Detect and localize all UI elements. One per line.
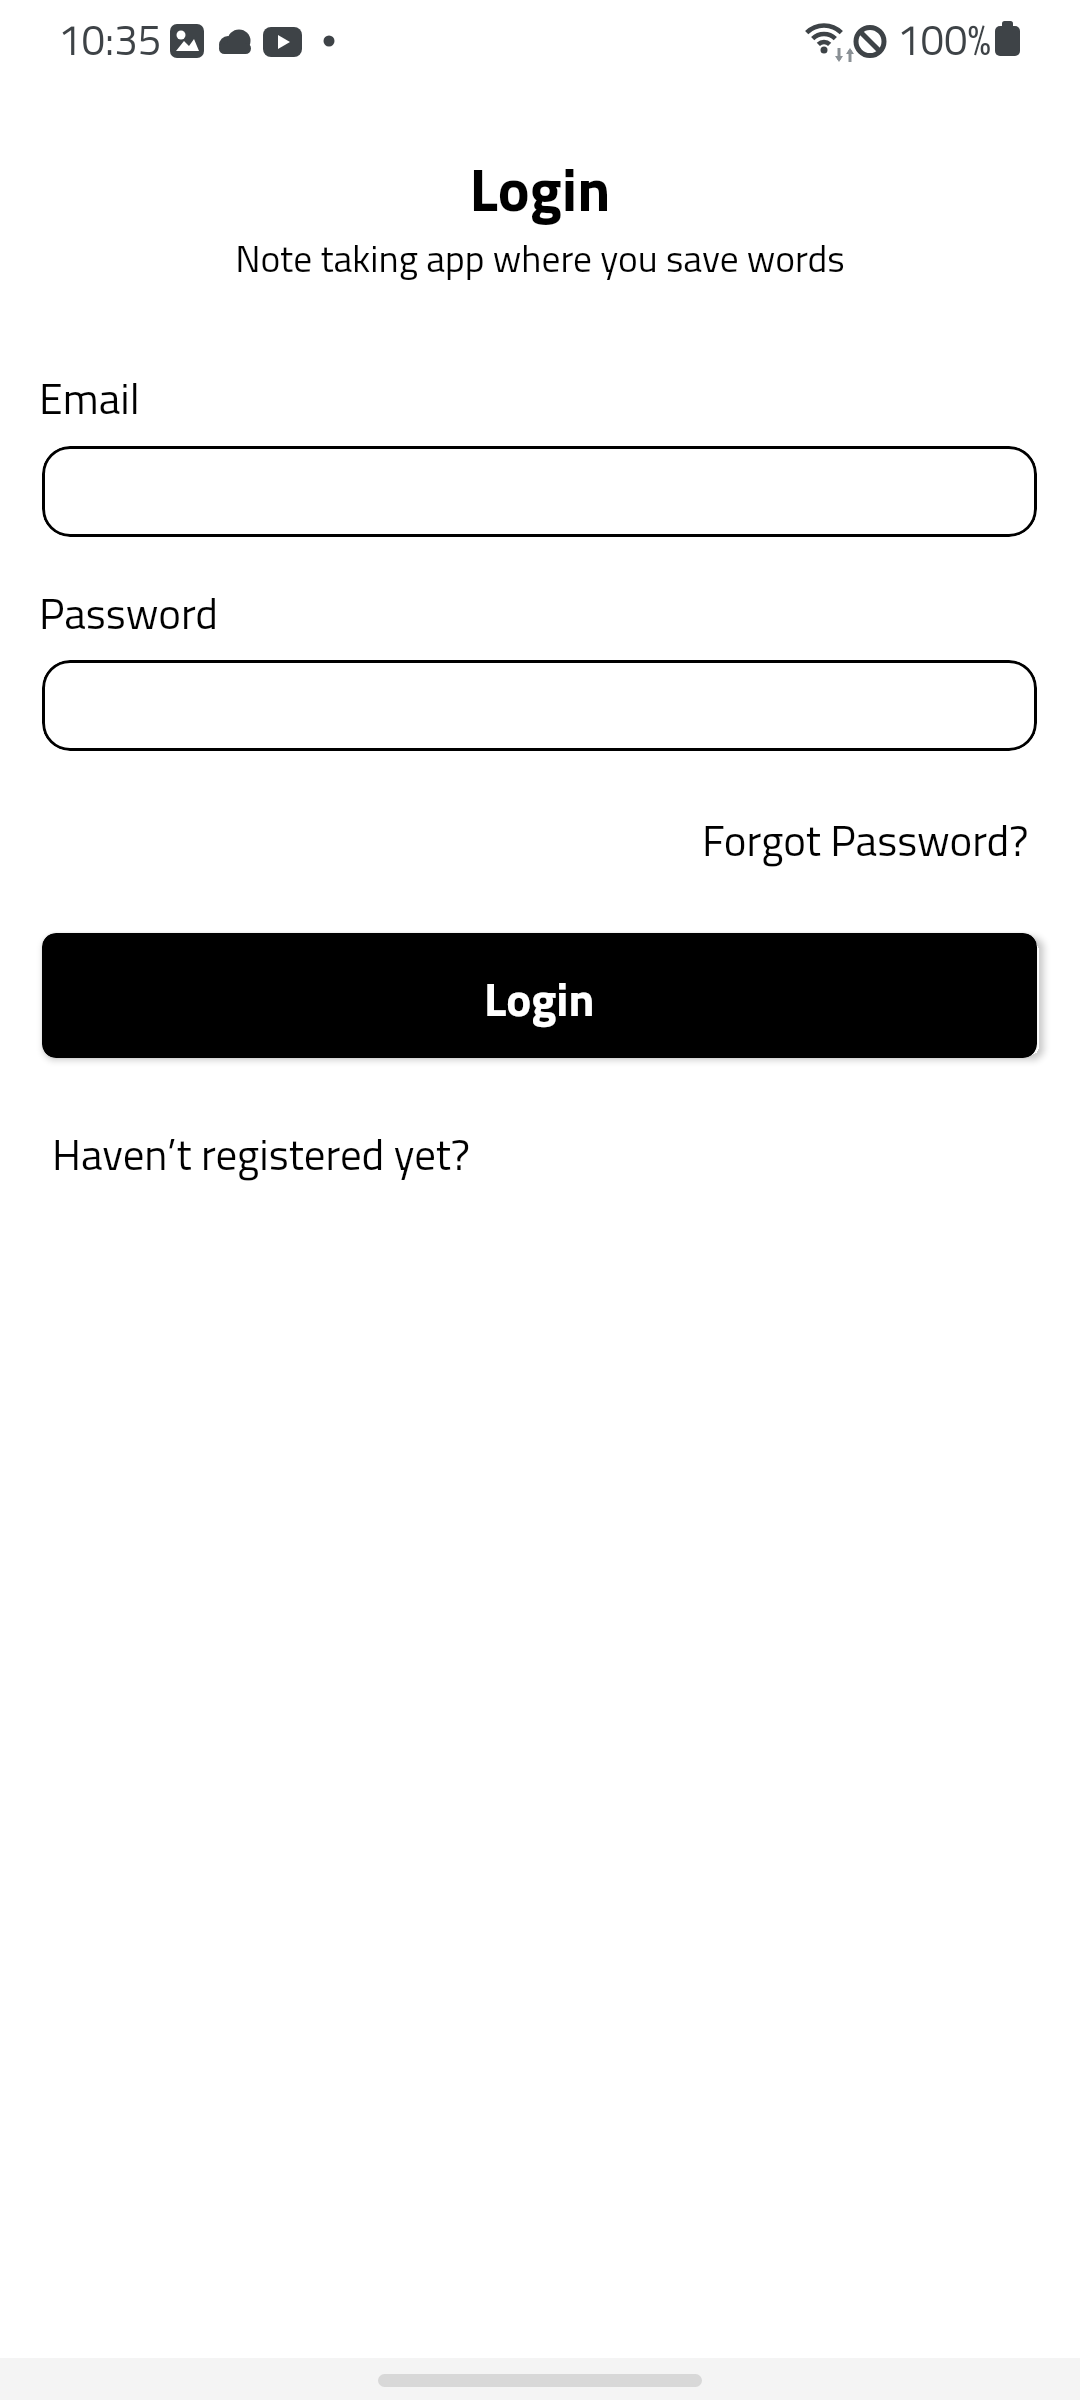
button[interactable]: Haven’t registered yet? [52, 1121, 471, 1186]
button[interactable]: Login [42, 933, 1037, 1058]
staticText: Email [39, 365, 140, 430]
button[interactable]: Forgot Password? [702, 807, 1029, 872]
staticText: 10:35 [58, 7, 162, 71]
staticText: Password [39, 580, 218, 645]
staticText: Login [484, 963, 595, 1034]
staticText: Note taking app where you save words [0, 230, 1080, 287]
button[interactable] [42, 446, 1037, 537]
staticText: 100% [897, 7, 992, 71]
staticText: Login [0, 143, 1080, 234]
button[interactable] [42, 660, 1037, 751]
